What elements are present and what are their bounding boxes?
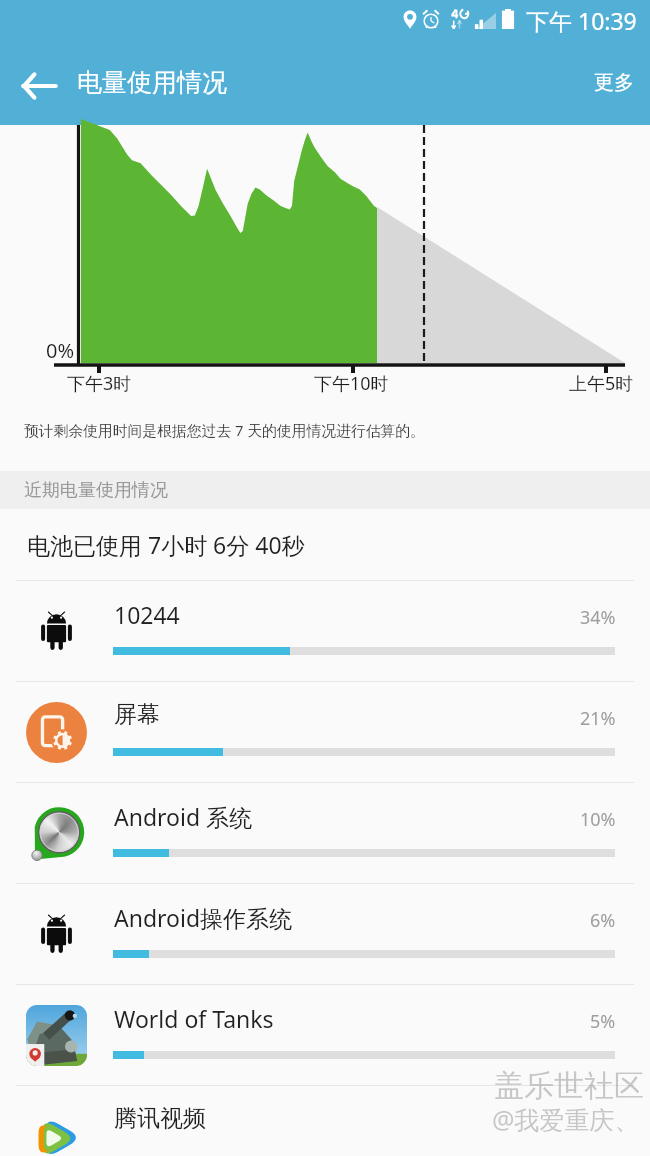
staticText: Android操作系统 [114,902,293,933]
staticText: 0% [46,337,75,364]
button[interactable]: Android操作系统 [0,884,650,984]
staticText: 下午 10:39 [526,5,637,36]
staticText: @我爱重庆、 [492,1102,640,1136]
staticText: 10244 [114,599,180,630]
staticText: 屏幕 [114,700,160,729]
staticText: 10% [580,807,616,832]
staticText: 上午5时 [569,371,634,396]
button[interactable]: 10244 [0,581,650,681]
staticText: 21% [580,706,616,731]
staticText: 34% [580,605,616,630]
button[interactable]: 屏幕 [0,682,650,782]
staticText: World of Tanks [114,1003,274,1034]
staticText: 预计剩余使用时间是根据您过去 7 天的使用情况进行估算的。 [24,420,425,440]
staticText: 盖乐世社区 [494,1067,644,1105]
staticText: 6% [590,908,616,933]
staticText: 下午3时 [67,371,132,396]
staticText: 下午10时 [314,371,389,396]
staticText: 近期电量使用情况 [24,479,168,502]
staticText: 5% [590,1009,616,1034]
button[interactable]: 更多 [578,48,650,117]
staticText: 电量使用情况 [77,67,227,98]
staticText: Android 系统 [114,801,253,832]
button[interactable]: Back [12,58,66,112]
staticText: 腾讯视频 [114,1104,206,1133]
button[interactable]: World of Tanks [0,985,650,1085]
staticText: 更多 [594,70,634,95]
button[interactable]: Android 系统 [0,783,650,883]
staticText: 电池已使用 7小时 6分 40秒 [27,529,305,560]
button[interactable]: 腾讯视频 [0,1086,650,1156]
